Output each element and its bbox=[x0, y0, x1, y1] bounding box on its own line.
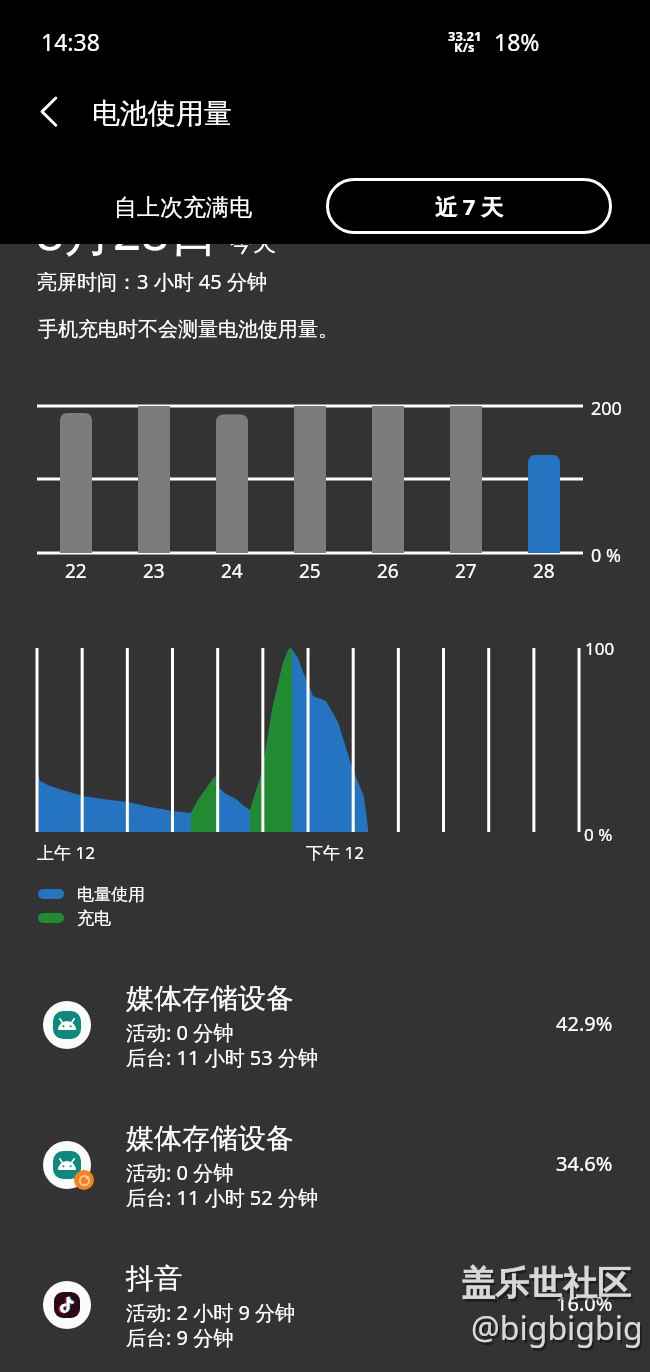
staticText: 28 bbox=[533, 558, 555, 584]
staticText: 27 bbox=[455, 558, 477, 584]
staticText: 电量使用 bbox=[77, 884, 145, 905]
staticText: 100 bbox=[585, 637, 615, 660]
staticText: 上午 12 bbox=[37, 841, 95, 864]
staticText: 自上次充满电 bbox=[114, 193, 252, 222]
button[interactable]: 返回 bbox=[25, 88, 73, 136]
staticText: 充电 bbox=[77, 908, 111, 929]
staticText: 后台: 11 小时 52 分钟 bbox=[126, 1184, 318, 1211]
staticText: 近 7 天 bbox=[435, 191, 504, 221]
staticText: 手机充电时不会测量电池使用量。 bbox=[38, 317, 338, 342]
staticText: 盖乐世社区 bbox=[463, 1265, 633, 1308]
staticText: 电池使用量 bbox=[92, 96, 232, 131]
staticText: 22 bbox=[65, 558, 87, 584]
button[interactable]: 近 7 天 bbox=[326, 178, 612, 234]
staticText: 抖音 bbox=[126, 1261, 182, 1296]
button[interactable]: 媒体存储设备 bbox=[0, 1096, 650, 1234]
staticText: 42.9% bbox=[556, 1010, 613, 1037]
staticText: 下午 12 bbox=[306, 841, 364, 864]
staticText: 0 % bbox=[584, 823, 613, 846]
staticText: 活动: 0 分钟 bbox=[126, 1019, 234, 1046]
staticText: 200 bbox=[591, 396, 622, 421]
button[interactable]: 抖音 bbox=[0, 1236, 650, 1372]
staticText: 16.0% bbox=[556, 1290, 613, 1317]
staticText: 媒体存储设备 bbox=[126, 1121, 294, 1156]
staticText: 媒体存储设备 bbox=[126, 981, 294, 1016]
staticText: 23 bbox=[143, 558, 165, 584]
staticText: 14:38 bbox=[41, 26, 100, 57]
staticText: 今天 bbox=[230, 229, 276, 258]
staticText: 25 bbox=[299, 558, 321, 584]
staticText: 34.6% bbox=[556, 1150, 613, 1177]
staticText: 盖乐世社区 bbox=[461, 1262, 631, 1305]
staticText: 后台: 9 分钟 bbox=[126, 1324, 234, 1351]
button[interactable]: 自上次充满电 bbox=[106, 187, 260, 228]
staticText: 24 bbox=[221, 558, 243, 584]
staticText: 亮屏时间：3 小时 45 分钟 bbox=[37, 268, 267, 295]
staticText: @bigbigbig bbox=[471, 1306, 643, 1350]
staticText: 活动: 0 分钟 bbox=[126, 1159, 234, 1186]
staticText: 活动: 2 小时 9 分钟 bbox=[126, 1299, 296, 1326]
staticText: K/s bbox=[454, 38, 475, 56]
staticText: 后台: 11 小时 53 分钟 bbox=[126, 1044, 318, 1071]
staticText: 33.21 bbox=[448, 27, 482, 45]
button[interactable]: 媒体存储设备 bbox=[0, 956, 650, 1094]
staticText: 18% bbox=[494, 26, 540, 57]
staticText: 0 % bbox=[591, 543, 621, 568]
staticText: 26 bbox=[377, 558, 399, 584]
staticText: @bigbigbig bbox=[473, 1309, 645, 1353]
staticText: 8月28日 bbox=[36, 198, 219, 265]
